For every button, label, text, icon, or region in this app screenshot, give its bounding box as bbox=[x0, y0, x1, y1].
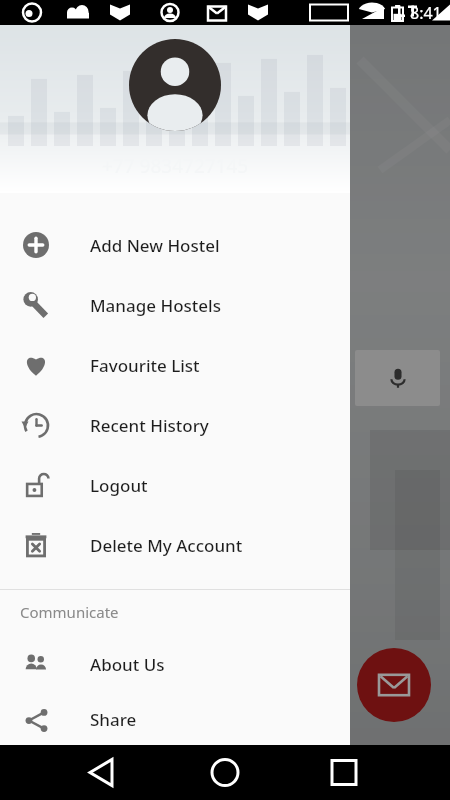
button[interactable]: Profile picture bbox=[129, 39, 221, 131]
button[interactable]: Delete My Account bbox=[0, 515, 350, 575]
button[interactable]: Share bbox=[0, 694, 350, 745]
staticText: Share bbox=[90, 708, 137, 731]
button[interactable]: Voice search bbox=[355, 350, 440, 406]
staticText: Add New Hostel bbox=[90, 234, 220, 257]
staticText: Manage Hostels bbox=[90, 294, 221, 317]
button[interactable]: Manage Hostels bbox=[0, 275, 350, 335]
button[interactable]: Profile picture bbox=[0, 25, 350, 193]
button[interactable]: Add New Hostel bbox=[0, 215, 350, 275]
button[interactable]: Favourite List bbox=[0, 335, 350, 395]
button[interactable]: Logout bbox=[0, 455, 350, 515]
button[interactable]: Send message bbox=[357, 648, 431, 722]
button[interactable]: About Us bbox=[0, 634, 350, 694]
staticText: About Us bbox=[90, 653, 165, 676]
staticText: Recent History bbox=[90, 414, 209, 437]
staticText: Favourite List bbox=[90, 354, 200, 377]
staticText: 8:41 bbox=[410, 2, 442, 24]
button[interactable]: Recent History bbox=[0, 395, 350, 455]
staticText: Logout bbox=[90, 474, 148, 497]
staticText: Communicate bbox=[20, 602, 119, 622]
staticText: Delete My Account bbox=[90, 534, 243, 557]
